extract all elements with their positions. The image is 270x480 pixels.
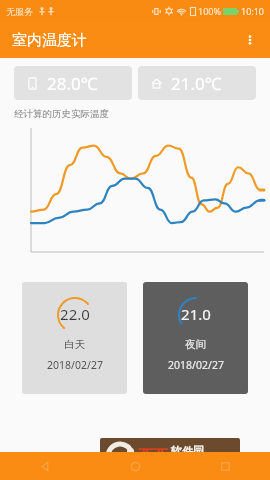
button[interactable]: Recents [180, 452, 270, 480]
staticText: 室内温度计 [12, 31, 87, 50]
staticText: 22.0 [60, 304, 90, 324]
staticText: 无服务 [6, 6, 33, 17]
staticText: 2018/02/27 [47, 358, 103, 372]
staticText: 21.0 [181, 304, 211, 324]
staticText: 2018/02/27 [168, 358, 224, 372]
staticText: 夜间 [185, 338, 206, 351]
button[interactable]: Back [0, 452, 90, 480]
staticText: 100% [198, 5, 221, 17]
button[interactable]: Home [90, 452, 180, 480]
staticText: 28.0℃ [47, 72, 98, 95]
staticText: 经计算的历史实际温度 [14, 108, 109, 120]
button[interactable]: 21.0 [143, 282, 248, 394]
button[interactable]: 28.0℃ [14, 66, 132, 100]
button[interactable]: 21.0℃ [138, 66, 256, 100]
staticText: 10:10 [241, 5, 265, 17]
button[interactable]: 22.0 [22, 282, 127, 394]
button[interactable]: More options [234, 24, 266, 56]
staticText: 白天 [64, 338, 85, 351]
staticText: 21.0℃ [171, 72, 222, 95]
staticText: 西西 [138, 447, 168, 466]
staticText: 软件园 [171, 444, 204, 458]
